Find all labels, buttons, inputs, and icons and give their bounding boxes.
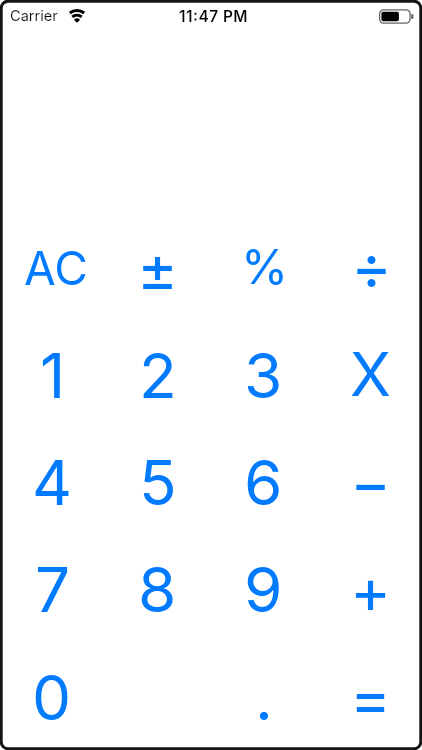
button[interactable]: ÷ [316, 214, 422, 322]
staticText: 8 [138, 552, 177, 627]
button[interactable]: . [210, 643, 316, 750]
staticText: % [241, 237, 289, 295]
staticText: Carrier [10, 7, 58, 25]
button[interactable]: 3 [210, 322, 316, 429]
button[interactable]: − [316, 429, 422, 536]
button[interactable]: 0 [0, 643, 105, 750]
staticText: 2 [139, 338, 177, 413]
button[interactable]: 9 [210, 536, 316, 643]
button[interactable]: 2 [105, 322, 210, 429]
button [105, 643, 210, 750]
staticText: 6 [244, 445, 283, 520]
button[interactable]: % [210, 214, 316, 322]
staticText: X [350, 338, 391, 411]
staticText: AC [24, 240, 88, 296]
staticText: + [350, 553, 392, 628]
button[interactable]: ± [105, 214, 210, 322]
staticText: − [350, 445, 392, 520]
staticText: = [350, 661, 392, 736]
button[interactable]: 1 [0, 322, 105, 429]
staticText: 5 [139, 445, 177, 520]
button[interactable]: 5 [105, 429, 210, 536]
staticText: 3 [244, 338, 283, 413]
button[interactable]: + [316, 536, 422, 643]
staticText: 4 [32, 445, 73, 520]
staticText: ÷ [351, 229, 393, 304]
button[interactable]: 4 [0, 429, 105, 536]
button[interactable]: X [316, 322, 422, 429]
button[interactable]: 6 [210, 429, 316, 536]
button[interactable]: = [316, 643, 422, 750]
staticText: ± [137, 231, 179, 306]
button[interactable]: AC [0, 214, 105, 322]
button[interactable]: 8 [105, 536, 210, 643]
button[interactable]: 7 [0, 536, 105, 643]
staticText: . [255, 660, 273, 735]
staticText: 9 [244, 552, 283, 627]
staticText: 7 [35, 552, 71, 627]
staticText: 11:47 PM [179, 7, 249, 26]
staticText: 0 [32, 660, 72, 735]
staticText: 1 [40, 338, 66, 413]
